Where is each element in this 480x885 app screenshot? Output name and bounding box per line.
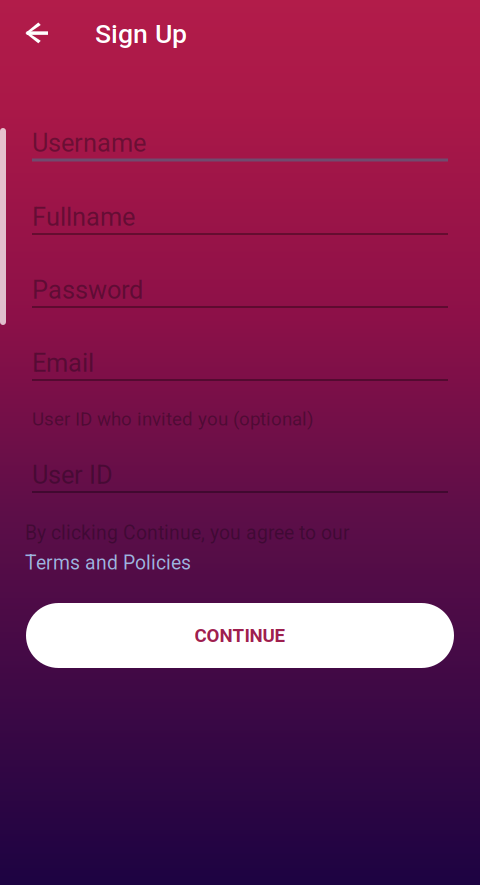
staticText: Fullname xyxy=(32,202,135,232)
staticText: Email xyxy=(32,348,94,378)
staticText: CONTINUE xyxy=(194,625,285,646)
button[interactable]: Email xyxy=(32,348,448,394)
button[interactable]: Username xyxy=(32,128,448,174)
staticText: Sign Up xyxy=(95,18,187,50)
staticText: Terms and Policies xyxy=(25,552,191,574)
button[interactable]: Back xyxy=(15,11,59,55)
button[interactable]: User ID xyxy=(32,460,448,506)
button[interactable]: CONTINUE xyxy=(26,603,454,668)
staticText: User ID who invited you (optional) xyxy=(32,408,313,430)
button[interactable]: Terms and Policies xyxy=(0,0,423,24)
staticText: Password xyxy=(32,275,143,305)
staticText: Username xyxy=(32,128,146,158)
staticText: User ID xyxy=(32,460,113,490)
button[interactable]: Password xyxy=(32,275,448,321)
button[interactable]: Fullname xyxy=(32,202,448,248)
staticText: By clicking Continue, you agree to our xyxy=(25,522,350,544)
